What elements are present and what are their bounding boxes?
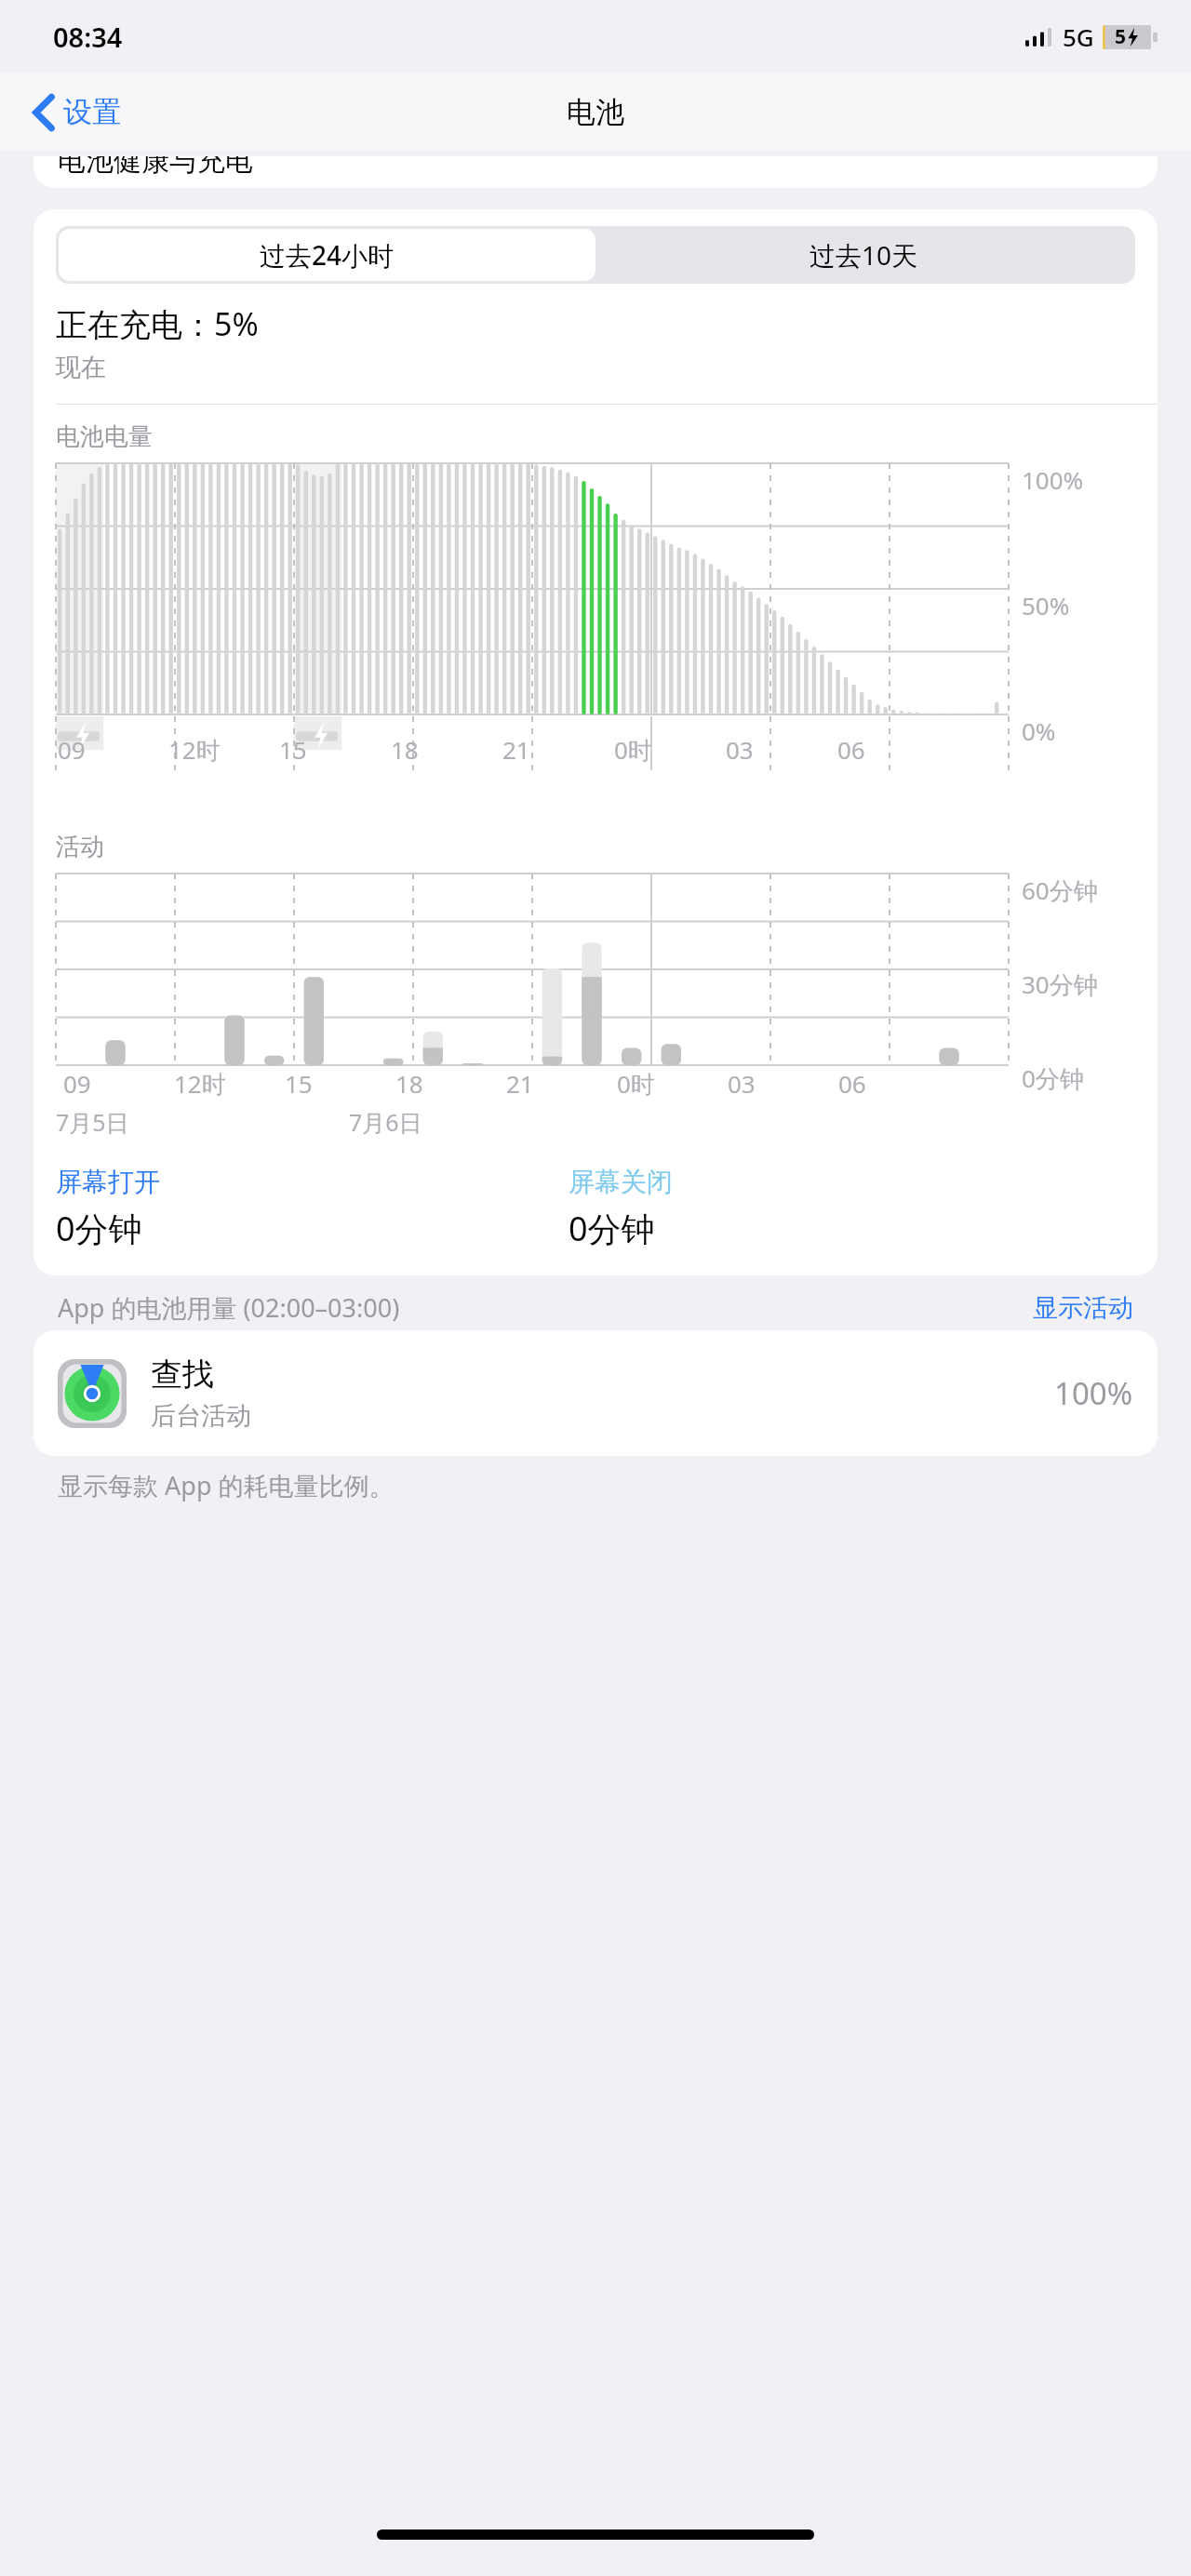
staticText: 15 <box>279 733 307 766</box>
staticText: 过去24小时 <box>260 237 395 273</box>
staticText: 0分钟 <box>1022 1061 1084 1095</box>
staticText: 0分钟 <box>56 1206 142 1251</box>
staticText: 08:34 <box>53 19 123 55</box>
staticText: 现在 <box>56 352 106 383</box>
staticText: 电池电量 <box>56 421 153 452</box>
staticText: 03 <box>726 733 754 766</box>
staticText: 18 <box>395 1067 423 1100</box>
staticText: 09 <box>58 733 86 766</box>
staticText: 设置 <box>63 94 121 130</box>
staticText: 60分钟 <box>1022 874 1098 907</box>
staticText: 0分钟 <box>569 1206 655 1251</box>
staticText: 21 <box>506 1067 534 1100</box>
staticText: 屏幕打开 <box>56 1166 160 1198</box>
staticText: 5 <box>1115 23 1127 50</box>
staticText: 7月6日 <box>349 1106 422 1138</box>
staticText: 06 <box>838 1067 866 1100</box>
staticText: 正在充电：5% <box>56 302 259 345</box>
staticText: 过去10天 <box>810 237 918 273</box>
staticText: 09 <box>63 1067 91 1100</box>
staticText: 0% <box>1022 714 1056 747</box>
button[interactable]: 查找 <box>33 1330 1158 1456</box>
button[interactable]: 过去10天 <box>595 229 1132 281</box>
staticText: 电池 <box>567 94 624 130</box>
staticText: App 的电池用量 (02:00–03:00) <box>58 1290 1033 1325</box>
staticText: 0时 <box>617 1067 655 1101</box>
staticText: 12时 <box>174 1067 226 1101</box>
staticText: 显示每款 App 的耗电量比例。 <box>58 1468 395 1502</box>
staticText: 18 <box>391 733 419 766</box>
staticText: 7月5日 <box>56 1106 129 1138</box>
staticText: 50% <box>1022 589 1070 621</box>
staticText: 12时 <box>168 733 221 767</box>
button[interactable]: 设置 <box>28 87 127 138</box>
staticText: 活动 <box>56 832 104 862</box>
staticText: 0时 <box>614 733 652 767</box>
staticText: 03 <box>728 1067 756 1100</box>
staticText: 30分钟 <box>1022 968 1098 1001</box>
staticText: 5G <box>1063 20 1094 53</box>
staticText: 100% <box>1054 1372 1133 1414</box>
staticText: 后台活动 <box>151 1400 251 1432</box>
staticText: 查找 <box>151 1355 214 1395</box>
staticText: 屏幕关闭 <box>569 1166 673 1198</box>
button[interactable]: 电池健康与充电 <box>33 156 1158 188</box>
button[interactable]: 过去24小时 <box>59 229 595 281</box>
staticText: 显示活动 <box>1033 1292 1133 1324</box>
staticText: 15 <box>285 1067 313 1100</box>
staticText: 100% <box>1022 463 1084 496</box>
staticText: 21 <box>502 733 530 766</box>
staticText: 06 <box>837 733 865 766</box>
button[interactable]: 显示活动 <box>1033 1292 1133 1324</box>
staticText: 电池健康与充电 <box>58 156 253 175</box>
